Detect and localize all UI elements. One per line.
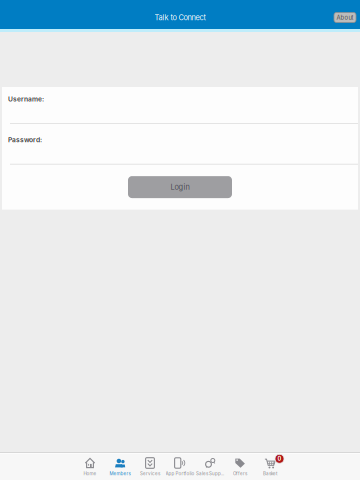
staticText: Username: — [8, 95, 44, 103]
staticText: Services — [140, 471, 160, 476]
staticText: Sales Supp... — [196, 471, 224, 476]
staticText: App Portfolio — [165, 471, 194, 476]
staticText: Offers — [233, 471, 247, 476]
staticText: Talk to Connect — [154, 13, 205, 22]
staticText: About — [336, 14, 353, 21]
button[interactable]: Offers — [225, 454, 255, 480]
button[interactable]: 0 — [255, 454, 285, 480]
button[interactable]: App Portfolio — [165, 454, 195, 480]
button[interactable]: Login — [128, 176, 232, 198]
button[interactable]: About — [334, 12, 356, 22]
button[interactable]: Services — [135, 454, 165, 480]
button[interactable]: Sales Supp... — [195, 454, 225, 480]
staticText: Members — [109, 471, 130, 476]
staticText: Login — [170, 183, 189, 192]
staticText: 0 — [277, 455, 281, 462]
staticText: Basket — [263, 471, 277, 476]
button[interactable]: Members — [105, 454, 135, 480]
staticText: Password: — [8, 136, 42, 144]
staticText: Home — [83, 471, 96, 476]
button[interactable]: Home — [75, 454, 105, 480]
